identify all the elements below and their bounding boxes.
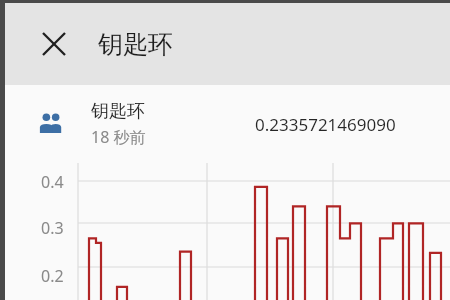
staticText: 钥匙环 <box>98 29 173 60</box>
button[interactable]: 钥匙环 <box>5 85 450 163</box>
staticText: 0.4 <box>41 171 64 193</box>
staticText: 钥匙环 <box>91 100 145 123</box>
staticText: 18 秒前 <box>91 126 146 148</box>
staticText: 0.2 <box>41 265 64 287</box>
staticText: 0.3 <box>41 217 64 239</box>
button[interactable]: Close <box>32 22 76 66</box>
staticText: 0.2335721469090 <box>255 113 396 136</box>
